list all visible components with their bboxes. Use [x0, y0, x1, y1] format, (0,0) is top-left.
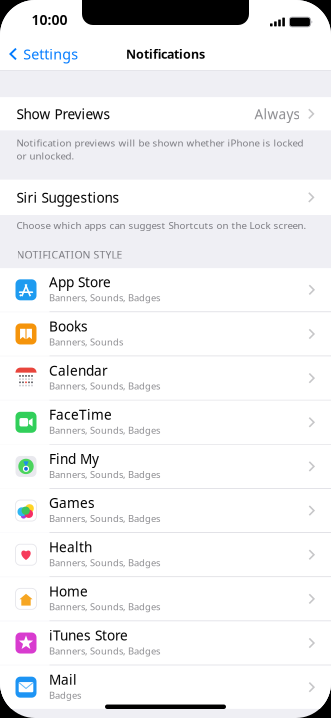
staticText: or unlocked.	[16, 149, 74, 162]
staticText: Find My	[49, 449, 99, 468]
staticText: Banners, Sounds, Badges	[49, 291, 160, 304]
staticText: NOTIFICATION STYLE	[16, 248, 122, 259]
staticText: Siri Suggestions	[16, 188, 119, 207]
staticText: Badges	[49, 689, 81, 701]
button[interactable]: Home	[0, 577, 331, 621]
staticText: Banners, Sounds, Badges	[49, 424, 160, 436]
staticText: Books	[49, 317, 88, 335]
staticText: Notification previews will be shown whet…	[16, 136, 303, 149]
staticText: Notifications	[126, 45, 205, 63]
button[interactable]: Settings	[0, 44, 86, 70]
staticText: Banners, Sounds	[49, 335, 123, 348]
button[interactable]: Books	[0, 312, 331, 356]
staticText: Home	[49, 582, 88, 600]
button[interactable]: Games	[0, 489, 331, 532]
button[interactable]: App Store	[0, 268, 331, 312]
staticText: Settings	[23, 44, 78, 64]
button[interactable]: FaceTime	[0, 401, 331, 444]
button[interactable]: Mail	[0, 665, 331, 709]
button[interactable]: Health	[0, 533, 331, 576]
staticText: App Store	[49, 273, 111, 291]
button[interactable]: Show Previews	[0, 97, 331, 131]
staticText: iTunes Store	[49, 626, 128, 644]
staticText: Always	[254, 105, 300, 123]
staticText: Banners, Sounds, Badges	[49, 468, 160, 481]
staticText: Banners, Sounds, Badges	[49, 380, 160, 392]
staticText: Banners, Sounds, Badges	[49, 644, 160, 657]
button[interactable]: Calendar	[0, 356, 331, 400]
staticText: Banners, Sounds, Badges	[49, 512, 160, 525]
button[interactable]: Siri Suggestions	[0, 180, 331, 215]
staticText: FaceTime	[49, 405, 112, 424]
button[interactable]: Find My	[0, 445, 331, 488]
staticText: Games	[49, 494, 95, 512]
staticText: Show Previews	[16, 105, 110, 123]
staticText: Health	[49, 538, 92, 556]
button[interactable]: iTunes Store	[0, 621, 331, 665]
staticText: Choose which apps can suggest Shortcuts …	[16, 219, 306, 232]
staticText: Mail	[49, 670, 77, 689]
staticText: 10:00	[31, 10, 67, 29]
staticText: Banners, Sounds, Badges	[49, 600, 160, 613]
staticText: Banners, Sounds, Badges	[49, 556, 160, 569]
staticText: Calendar	[49, 361, 108, 380]
